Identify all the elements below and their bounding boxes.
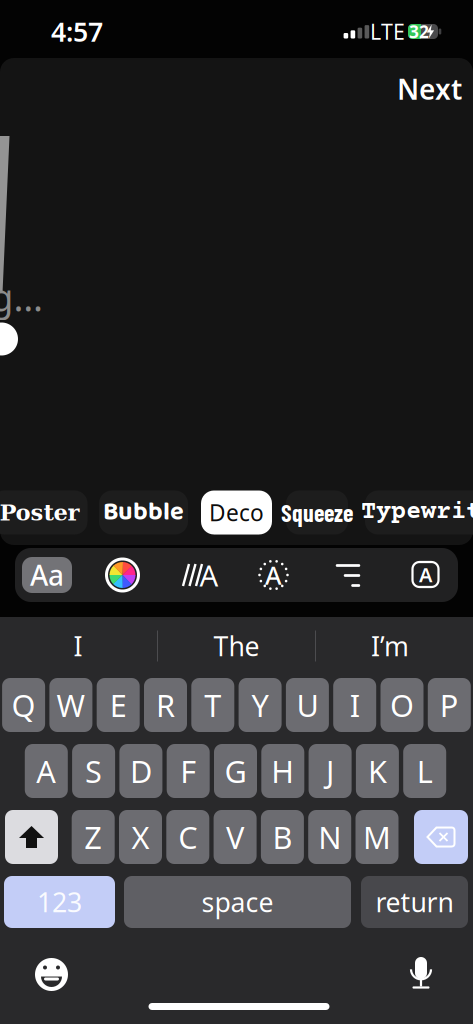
- button[interactable]: The: [166, 626, 306, 666]
- staticText: Aa: [30, 556, 64, 594]
- staticText: A: [36, 751, 56, 791]
- button[interactable]: Q: [2, 678, 45, 732]
- staticText: O: [390, 685, 414, 725]
- button[interactable]: Background: [412, 562, 438, 587]
- staticText: K: [368, 751, 387, 791]
- staticText: Z: [84, 817, 102, 857]
- button[interactable]: N: [308, 810, 351, 864]
- button[interactable]: V: [214, 810, 257, 864]
- staticText: D: [130, 751, 152, 791]
- button[interactable]: M: [355, 810, 398, 864]
- staticText: R: [156, 685, 175, 725]
- button[interactable]: Font: [22, 557, 72, 593]
- button[interactable]: Slant: [180, 562, 218, 588]
- button[interactable]: H: [261, 744, 304, 798]
- button[interactable]: I: [8, 626, 148, 666]
- button[interactable]: B: [261, 810, 304, 864]
- staticText: B: [272, 817, 292, 857]
- staticText: space: [201, 884, 273, 920]
- button[interactable]: D: [119, 744, 162, 798]
- staticText: The: [213, 628, 259, 664]
- button[interactable]: Z: [72, 810, 115, 864]
- button[interactable]: L: [403, 744, 446, 798]
- staticText: W: [56, 685, 85, 725]
- button[interactable]: Y: [239, 678, 282, 732]
- staticText: 4:57: [51, 14, 103, 49]
- staticText: Next: [397, 70, 462, 108]
- button[interactable]: return: [361, 876, 468, 928]
- button[interactable]: X: [119, 810, 162, 864]
- staticText: Squeeze: [281, 498, 353, 527]
- button[interactable]: R: [144, 678, 187, 732]
- button[interactable]: Squeeze: [286, 490, 348, 534]
- button[interactable]: I: [333, 678, 376, 732]
- button[interactable]: Effects: [256, 558, 290, 592]
- button[interactable]: G: [214, 744, 257, 798]
- staticText: E: [110, 685, 127, 725]
- staticText: I: [73, 628, 82, 664]
- staticText: S: [85, 751, 102, 791]
- button[interactable]: E: [97, 678, 140, 732]
- staticText: Poster: [0, 499, 79, 526]
- button[interactable]: F: [167, 744, 210, 798]
- button[interactable]: W: [49, 678, 92, 732]
- button[interactable]: Deco: [201, 490, 272, 534]
- staticText: A: [265, 558, 282, 592]
- button[interactable]: Next: [397, 70, 462, 108]
- button[interactable]: Emoji: [34, 957, 68, 991]
- button[interactable]: I’m: [320, 626, 460, 666]
- button[interactable]: K: [356, 744, 399, 798]
- staticText: I: [350, 685, 360, 725]
- staticText: N: [318, 817, 341, 857]
- button[interactable]: Dictate: [405, 956, 437, 989]
- staticText: X: [131, 817, 149, 857]
- staticText: I’m: [371, 628, 409, 664]
- staticText: V: [226, 817, 244, 857]
- button[interactable]: Alignment: [334, 563, 361, 587]
- staticText: J: [326, 751, 334, 791]
- staticText: P: [440, 685, 459, 725]
- staticText: Bubble: [103, 492, 184, 533]
- button[interactable]: O: [380, 678, 423, 732]
- staticText: G: [224, 751, 246, 791]
- button[interactable]: Color: [105, 558, 139, 592]
- staticText: Typewriter: [361, 498, 473, 527]
- button[interactable]: 123: [4, 876, 115, 928]
- staticText: A: [199, 555, 218, 594]
- button[interactable]: S: [72, 744, 115, 798]
- staticText: H: [271, 751, 294, 791]
- button[interactable]: T: [191, 678, 234, 732]
- button[interactable]: Delete: [414, 810, 468, 864]
- staticText: L: [417, 751, 433, 791]
- staticText: T: [204, 685, 221, 725]
- button[interactable]: Poster: [0, 490, 87, 534]
- staticText: Q: [12, 685, 36, 725]
- staticText: 123: [37, 884, 82, 920]
- staticText: Y: [252, 685, 269, 725]
- staticText: A: [419, 561, 432, 588]
- button[interactable]: Shift: [5, 810, 58, 864]
- button[interactable]: A: [25, 744, 68, 798]
- staticText: g…: [0, 272, 43, 322]
- button[interactable]: Typewriter: [365, 490, 473, 534]
- staticText: 32: [409, 20, 429, 43]
- staticText: C: [178, 817, 197, 857]
- staticText: Deco: [209, 497, 264, 527]
- staticText: M: [363, 817, 391, 857]
- staticText: F: [180, 751, 196, 791]
- button[interactable]: C: [166, 810, 209, 864]
- button[interactable]: space: [124, 876, 351, 928]
- staticText: LTE: [370, 17, 405, 46]
- staticText: U: [296, 685, 318, 725]
- button[interactable]: U: [286, 678, 329, 732]
- staticText: return: [375, 884, 453, 920]
- button[interactable]: P: [428, 678, 471, 732]
- button[interactable]: Bubble: [99, 490, 188, 534]
- button[interactable]: J: [309, 744, 352, 798]
